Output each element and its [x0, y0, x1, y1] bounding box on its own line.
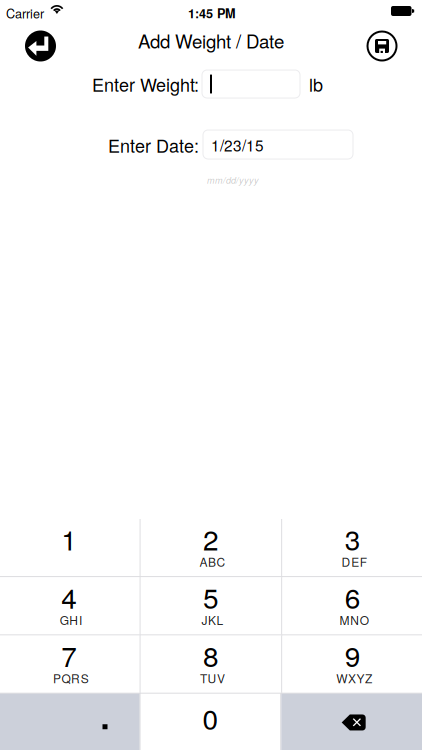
staticText: 6: [345, 577, 361, 617]
button[interactable]: 2: [141, 519, 281, 576]
staticText: WXYZ: [336, 669, 372, 687]
staticText: TUV: [200, 669, 225, 687]
staticText: 1:45 PM: [188, 4, 236, 22]
button[interactable]: 7: [0, 635, 140, 693]
staticText: 9: [345, 635, 361, 675]
button[interactable]: Decimal point: [0, 694, 140, 750]
staticText: 4: [61, 577, 77, 617]
staticText: 7: [61, 635, 77, 675]
staticText: Enter Weight:: [92, 71, 199, 97]
button[interactable]: Back: [18, 24, 62, 68]
staticText: 8: [203, 635, 219, 675]
staticText: 0: [202, 698, 218, 738]
staticText: 5: [203, 577, 219, 617]
staticText: 2: [203, 518, 219, 559]
button[interactable]: 6: [282, 577, 422, 634]
staticText: PQRS: [53, 669, 89, 687]
button[interactable]: 3: [282, 519, 422, 576]
staticText: mm/dd/yyyy: [207, 174, 259, 186]
button[interactable]: 8: [141, 635, 281, 693]
button[interactable]: 4: [0, 577, 140, 634]
staticText: 1/23/15: [211, 134, 264, 156]
staticText: ABC: [199, 553, 226, 570]
staticText: Enter Date:: [108, 132, 199, 158]
button[interactable]: 0: [141, 694, 280, 750]
staticText: 1: [61, 518, 77, 559]
staticText: lb: [309, 71, 323, 97]
button[interactable]: Save: [360, 24, 404, 68]
button[interactable]: [202, 70, 300, 98]
staticText: MNO: [340, 611, 369, 628]
staticText: Carrier: [6, 4, 44, 22]
staticText: 3: [345, 518, 361, 559]
button[interactable]: 1: [0, 519, 140, 576]
button[interactable]: 5: [141, 577, 281, 634]
button[interactable]: 9: [282, 635, 422, 693]
staticText: DEF: [342, 553, 367, 570]
staticText: GHI: [60, 611, 82, 628]
staticText: JKL: [201, 611, 224, 628]
staticText: Add Weight / Date: [138, 27, 284, 54]
button[interactable]: 1/23/15: [203, 130, 353, 159]
button[interactable]: Delete: [281, 694, 422, 750]
